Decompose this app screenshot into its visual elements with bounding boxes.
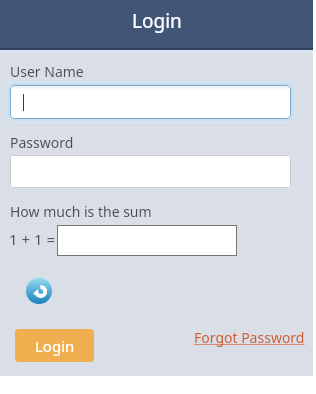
staticText: User Name <box>10 62 84 81</box>
staticText: Login <box>132 8 182 34</box>
staticText: Password <box>10 133 74 152</box>
button[interactable]: Login <box>15 329 94 362</box>
staticText: Login <box>35 336 75 356</box>
staticText: Forgot Password <box>194 328 305 347</box>
button[interactable]: Forgot Password <box>194 328 305 347</box>
staticText: How much is the sum <box>10 202 152 221</box>
staticText: 1 + 1 = <box>9 229 56 249</box>
button[interactable] <box>10 155 291 188</box>
button[interactable]: Refresh <box>26 278 52 304</box>
button[interactable] <box>10 85 291 119</box>
button[interactable] <box>57 225 237 256</box>
